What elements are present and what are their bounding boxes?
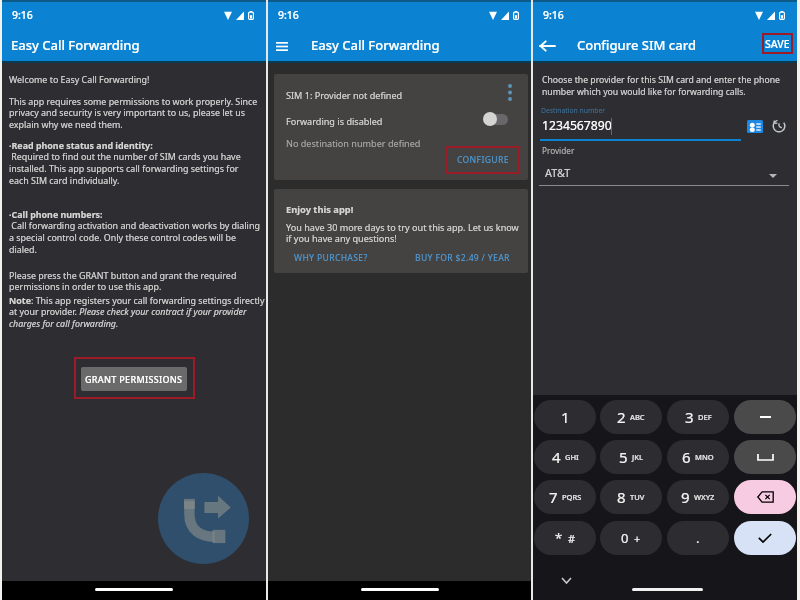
staticText: ABC <box>630 412 645 422</box>
staticText: Please press the GRANT button and grant … <box>9 269 237 293</box>
button[interactable]: Space <box>734 440 796 474</box>
staticText: 9:16 <box>12 8 33 22</box>
staticText: 3 <box>685 407 694 427</box>
button[interactable]: WHY PURCHASE? <box>288 248 376 268</box>
staticText: 5 <box>619 447 628 467</box>
staticText: 0 <box>621 529 629 547</box>
button[interactable]: Back <box>535 34 559 58</box>
staticText: Note: This app registers your call forwa… <box>9 294 265 330</box>
staticText: CONFIGURE <box>457 154 509 166</box>
staticText: 9 <box>681 487 690 507</box>
staticText: ·Call phone numbers: Call forwarding act… <box>9 208 260 256</box>
staticText: MNO <box>695 452 714 462</box>
staticText: + <box>634 531 641 546</box>
staticText: Enjoy this app! <box>286 203 354 216</box>
staticText: # <box>568 531 576 546</box>
staticText: ·Read phone status and identity: Require… <box>9 139 241 187</box>
button[interactable]: 7 <box>534 480 596 514</box>
button[interactable]: Pick contact <box>746 119 764 134</box>
button[interactable]: BUY FOR $2.49 / YEAR <box>404 248 516 268</box>
staticText: 1234567890 <box>542 117 612 134</box>
staticText: 8 <box>617 487 626 507</box>
staticText: 4 <box>552 447 561 467</box>
button[interactable]: Open navigation menu <box>270 34 294 58</box>
button[interactable]: SAVE <box>762 33 793 54</box>
staticText: WXYZ <box>694 492 715 502</box>
staticText: No destination number defined <box>286 137 421 149</box>
button[interactable]: Hide keyboard <box>559 573 573 587</box>
staticText: You have 30 more days to try out this ap… <box>286 221 526 245</box>
button[interactable]: Provider dropdown <box>766 171 780 181</box>
button[interactable]: 8 <box>600 480 662 514</box>
staticText: SAVE <box>765 37 790 51</box>
button[interactable]: Recent numbers <box>771 118 786 133</box>
staticText: TUV <box>630 492 645 502</box>
button[interactable]: 0 <box>600 521 662 555</box>
button[interactable]: 4 <box>534 440 596 474</box>
button[interactable]: CONFIGURE <box>449 149 516 171</box>
button[interactable]: 6 <box>667 440 729 474</box>
staticText: SIM 1: Provider not defined <box>286 89 403 101</box>
staticText: 6 <box>682 447 691 467</box>
button[interactable]: 3 <box>667 400 729 434</box>
staticText: AT&T <box>545 165 571 180</box>
staticText: 9:16 <box>543 8 564 22</box>
button[interactable]: . <box>667 521 729 555</box>
button[interactable]: Enter <box>734 521 796 555</box>
staticText: 9:16 <box>278 8 299 22</box>
button[interactable]: Forwarding toggle <box>482 110 510 128</box>
button[interactable]: 1 <box>534 400 596 434</box>
staticText: 1 <box>561 407 570 427</box>
staticText: Destination number <box>541 106 606 115</box>
staticText: . <box>696 529 700 547</box>
button[interactable]: GRANT PERMISSIONS <box>81 367 187 391</box>
staticText: Provider <box>542 145 575 156</box>
button[interactable]: 5 <box>600 440 662 474</box>
staticText: GRANT PERMISSIONS <box>85 373 183 385</box>
staticText: Forwarding is disabled <box>286 115 383 127</box>
staticText: Easy Call Forwarding <box>11 36 140 54</box>
button[interactable]: * <box>534 521 596 555</box>
staticText: BUY FOR $2.49 / YEAR <box>415 252 510 264</box>
staticText: Easy Call Forwarding <box>311 36 440 54</box>
button[interactable]: More options <box>500 82 520 102</box>
staticText: This app requires some permissions to wo… <box>9 95 258 131</box>
staticText: * <box>555 529 563 547</box>
button[interactable]: Backspace <box>734 480 796 514</box>
staticText: GHI <box>565 452 579 462</box>
staticText: 2 <box>617 407 626 427</box>
staticText: PQRS <box>562 492 582 502</box>
button[interactable]: 9 <box>667 480 729 514</box>
staticText: 7 <box>549 487 558 507</box>
button[interactable]: 2 <box>600 400 662 434</box>
staticText: JKL <box>632 452 643 462</box>
staticText: Welcome to Easy Call Forwarding! <box>9 73 150 85</box>
staticText: WHY PURCHASE? <box>294 252 368 264</box>
staticText: Choose the provider for this SIM card an… <box>542 74 791 98</box>
staticText: Configure SIM card <box>577 36 696 54</box>
button[interactable]: Dash <box>734 400 796 434</box>
staticText: DEF <box>698 412 712 422</box>
